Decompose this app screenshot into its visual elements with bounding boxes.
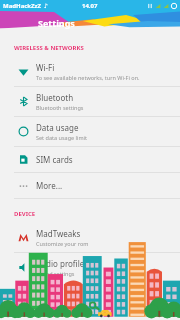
staticText: To see available networks, turn Wi-Fi on… — [36, 74, 140, 81]
staticText: 14.07 — [82, 2, 98, 10]
staticText: Customize your rom — [36, 240, 89, 247]
button[interactable]: Audio profiles — [0, 253, 180, 282]
staticText: Bluetooth — [36, 92, 74, 103]
other: SIM cards — [18, 154, 29, 165]
button[interactable]: Wi-Fi — [0, 57, 180, 86]
other: Wi-Fi — [18, 66, 29, 77]
staticText: WIRELESS & NETWORKS — [14, 44, 84, 52]
staticText: Bluetooth settings — [36, 104, 84, 111]
other: Audio profiles — [18, 262, 29, 273]
staticText: SIM cards — [36, 154, 73, 165]
button[interactable]: More — [0, 173, 180, 198]
staticText: DEVICE — [14, 210, 36, 218]
other: MadTweaks — [18, 232, 29, 243]
staticText: MadHackZzZ ♪ — [3, 2, 48, 10]
staticText: Audio profiles — [36, 258, 89, 269]
other: Data usage — [18, 126, 29, 137]
staticText: Wi-Fi — [36, 62, 55, 73]
button[interactable]: Bluetooth — [0, 87, 180, 116]
staticText: More... — [36, 180, 63, 191]
staticText: Settings — [38, 17, 75, 29]
staticText: Data usage — [36, 122, 79, 133]
staticText: Sound settings — [36, 270, 75, 277]
button[interactable]: MadTweaks — [0, 223, 180, 252]
staticText: MadTweaks — [36, 228, 81, 239]
button[interactable]: Data usage — [0, 117, 180, 146]
other: More — [18, 180, 29, 191]
staticText: Set data usage limit — [36, 134, 87, 141]
button[interactable]: SIM cards — [0, 147, 180, 172]
other: Bluetooth — [18, 96, 29, 107]
